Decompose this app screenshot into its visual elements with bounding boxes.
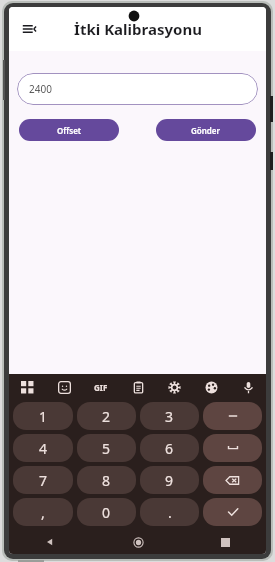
button[interactable]: , — [13, 498, 73, 526]
button[interactable]: . — [140, 498, 199, 526]
button[interactable]: Settings — [160, 374, 188, 400]
staticText: Offset — [57, 125, 82, 136]
button[interactable]: 0 — [77, 498, 136, 526]
button[interactable]: Voice input — [234, 374, 262, 400]
button[interactable]: Themes — [197, 374, 225, 400]
button[interactable]: Back — [39, 531, 61, 553]
button[interactable]: 2 — [77, 402, 136, 430]
staticText: . — [168, 503, 172, 522]
staticText: Gönder — [191, 125, 221, 136]
button[interactable]: Enter — [203, 498, 262, 526]
button[interactable]: Gönder — [156, 119, 256, 141]
staticText: 9 — [165, 471, 174, 490]
staticText: 1 — [39, 407, 48, 426]
button[interactable]: Apps — [13, 374, 41, 400]
staticText: 8 — [102, 471, 111, 490]
button[interactable]: Space — [203, 434, 262, 462]
button[interactable]: Minus — [203, 402, 262, 430]
button[interactable]: Offset — [19, 119, 119, 141]
staticText: 7 — [39, 471, 48, 490]
button[interactable]: 4 — [13, 434, 73, 462]
button[interactable]: Stickers — [50, 374, 78, 400]
staticText: İtki Kalibrasyonu — [74, 19, 202, 39]
button[interactable]: 9 — [140, 466, 199, 494]
staticText: 0 — [102, 503, 111, 522]
button[interactable]: Home — [127, 531, 149, 553]
staticText: 3 — [165, 407, 174, 426]
staticText: 2 — [102, 407, 111, 426]
staticText: , — [41, 503, 45, 522]
staticText: 4 — [39, 439, 48, 458]
staticText: 5 — [102, 439, 111, 458]
button[interactable]: 8 — [77, 466, 136, 494]
button[interactable]: GIF — [87, 374, 115, 400]
button[interactable]: 1 — [13, 402, 73, 430]
button[interactable]: Clipboard — [124, 374, 152, 400]
staticText: GIF — [94, 382, 108, 393]
button[interactable]: Menu — [15, 14, 45, 44]
staticText: 2400 — [29, 82, 52, 96]
button[interactable]: Backspace — [203, 466, 262, 494]
button[interactable]: Recent apps — [214, 531, 236, 553]
button[interactable]: 3 — [140, 402, 199, 430]
button[interactable]: 2400 — [17, 73, 258, 105]
button[interactable]: 5 — [77, 434, 136, 462]
staticText: 6 — [165, 439, 174, 458]
button[interactable]: 7 — [13, 466, 73, 494]
button[interactable]: 6 — [140, 434, 199, 462]
